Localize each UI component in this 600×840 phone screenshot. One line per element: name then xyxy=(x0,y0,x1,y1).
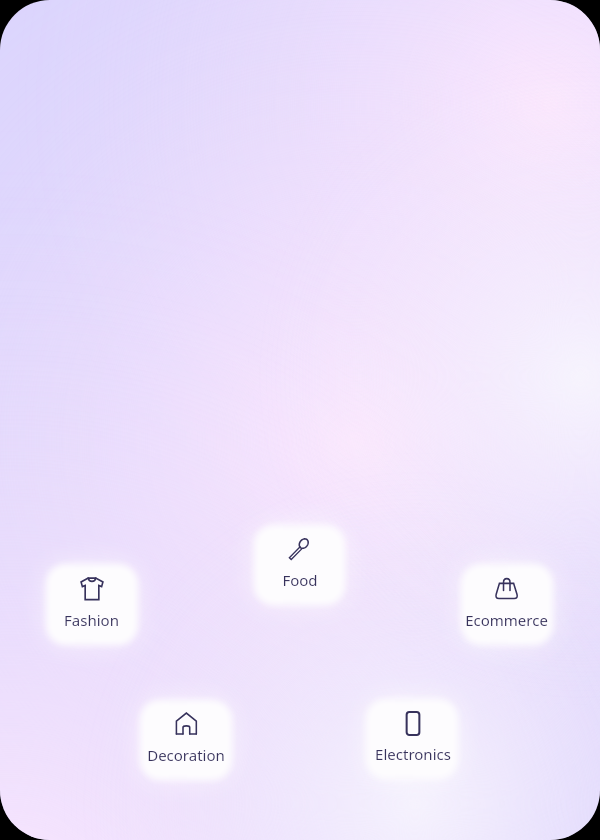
staticText: Food xyxy=(282,570,318,590)
button[interactable]: Food category xyxy=(254,525,345,605)
staticText: Electronics xyxy=(375,744,451,764)
staticText: Ecommerce xyxy=(465,610,548,630)
button[interactable]: Electronics category xyxy=(367,699,458,779)
button[interactable]: Fashion category xyxy=(46,565,137,645)
button[interactable]: Decoration category xyxy=(140,700,231,780)
staticText: Fashion xyxy=(64,610,119,630)
button[interactable]: Ecommerce category xyxy=(461,565,552,645)
staticText: Decoration xyxy=(147,745,225,765)
